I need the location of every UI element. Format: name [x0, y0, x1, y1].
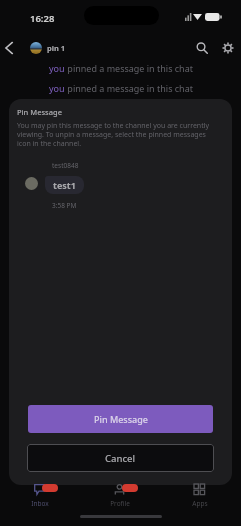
staticText: test1 [53, 179, 76, 191]
staticText: pinned a message in this chat [65, 82, 193, 94]
button[interactable]: Inbox [10, 481, 70, 511]
staticText: Inbox [31, 499, 49, 508]
staticText: Pin Message [94, 413, 148, 425]
button[interactable]: Profile [90, 481, 150, 511]
staticText: you [49, 82, 65, 94]
staticText: you [49, 62, 65, 74]
button[interactable]: Pin Message [28, 405, 213, 433]
button[interactable]: Search [190, 36, 214, 60]
button[interactable]: Settings [216, 36, 240, 60]
button[interactable]: Apps [170, 481, 230, 511]
staticText: Apps [192, 499, 208, 508]
staticText: test0848 [52, 161, 79, 170]
staticText: You may pin this message to the channel … [17, 121, 216, 148]
staticText: Cancel [105, 452, 136, 465]
staticText: Pin Message [17, 107, 62, 117]
staticText: pinned a message in this chat [65, 62, 193, 74]
staticText: Profile [110, 499, 130, 508]
button[interactable]: Back [0, 36, 21, 60]
button[interactable]: Cancel [27, 444, 214, 472]
staticText: pin 1 [47, 43, 66, 53]
staticText: 3:58 PM [52, 201, 77, 210]
staticText: 16:28 [30, 12, 55, 25]
